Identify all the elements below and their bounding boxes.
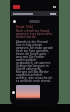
staticText: Heute 19:42: [16, 25, 33, 29]
staticText: Noch schnell am Strand gewesen, kurz bev…: [16, 29, 53, 39]
button[interactable]: [11, 11, 58, 16]
button[interactable]: Logo: [13, 5, 20, 9]
staticText: Abends ist der Himmel hier richtig schoe…: [16, 40, 53, 83]
button[interactable]: Photo: [16, 85, 40, 100]
